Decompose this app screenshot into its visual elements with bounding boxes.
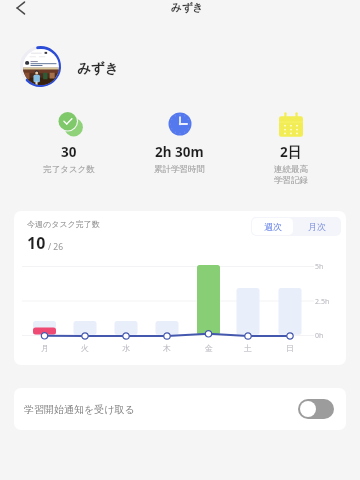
staticText: 2h 30m	[155, 143, 204, 161]
staticText: 2.5h	[315, 297, 330, 307]
button[interactable]: 学習開始通知を受け取る	[298, 399, 334, 419]
staticText: 金	[205, 343, 213, 353]
staticText: みずき	[77, 60, 119, 77]
staticText: 5h	[315, 262, 324, 272]
staticText: 木	[163, 343, 171, 353]
staticText: 完了タスク数	[43, 164, 95, 175]
staticText: 日	[286, 343, 294, 353]
staticText: 累計学習時間	[154, 164, 205, 175]
staticText: みずき	[171, 1, 204, 14]
button[interactable]: 2日	[235, 108, 346, 186]
staticText: 月次	[308, 221, 326, 232]
button[interactable]: 2h 30m	[124, 108, 235, 175]
button[interactable]: 週次	[252, 218, 293, 235]
staticText: 30	[61, 143, 77, 161]
staticText: 2日	[280, 143, 302, 161]
staticText: 月	[41, 343, 49, 353]
staticText: 連続最高 学習記録	[274, 164, 308, 186]
staticText: 土	[244, 343, 252, 353]
staticText: 学習開始通知を受け取る	[24, 403, 135, 416]
button[interactable]: 30	[14, 108, 124, 175]
staticText: 水	[122, 343, 130, 353]
staticText: 10	[27, 232, 46, 254]
staticText: 火	[81, 343, 89, 353]
staticText: / 26	[48, 241, 64, 253]
button[interactable]: Back	[7, 0, 33, 21]
staticText: 週次	[264, 221, 282, 232]
staticText: 0h	[315, 331, 324, 341]
staticText: 今週のタスク完了数	[27, 219, 100, 229]
button[interactable]: 月次	[293, 218, 340, 235]
